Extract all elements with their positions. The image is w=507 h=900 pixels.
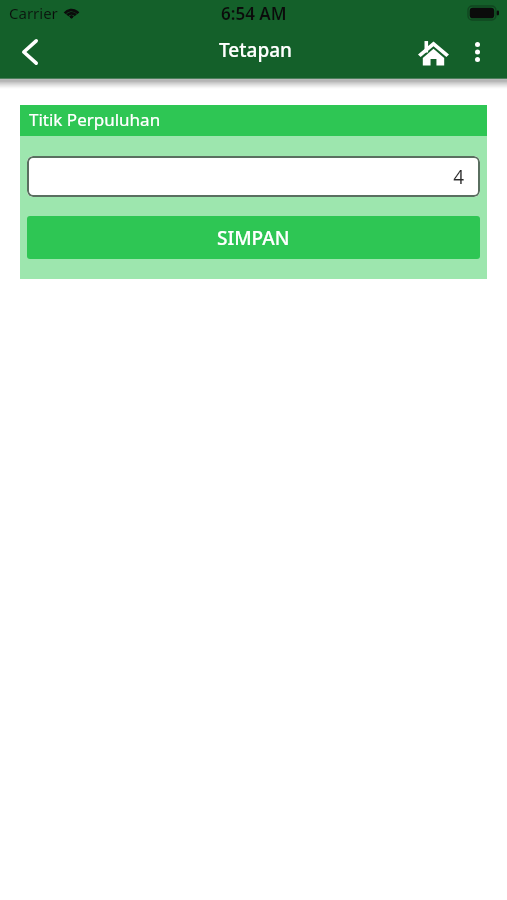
staticText: Titik Perpuluhan	[29, 108, 161, 131]
staticText: 6:54 AM	[221, 2, 287, 25]
staticText: Carrier	[9, 3, 58, 23]
button[interactable]: Titik Perpuluhan input	[27, 156, 480, 197]
staticText: SIMPAN	[217, 225, 290, 251]
staticText: Tetapan	[219, 37, 292, 63]
button[interactable]: More options	[454, 26, 501, 78]
button[interactable]: Home	[406, 26, 454, 78]
button[interactable]: Back	[0, 26, 59, 78]
staticText: 4	[453, 164, 464, 190]
button[interactable]: SIMPAN	[27, 216, 480, 259]
